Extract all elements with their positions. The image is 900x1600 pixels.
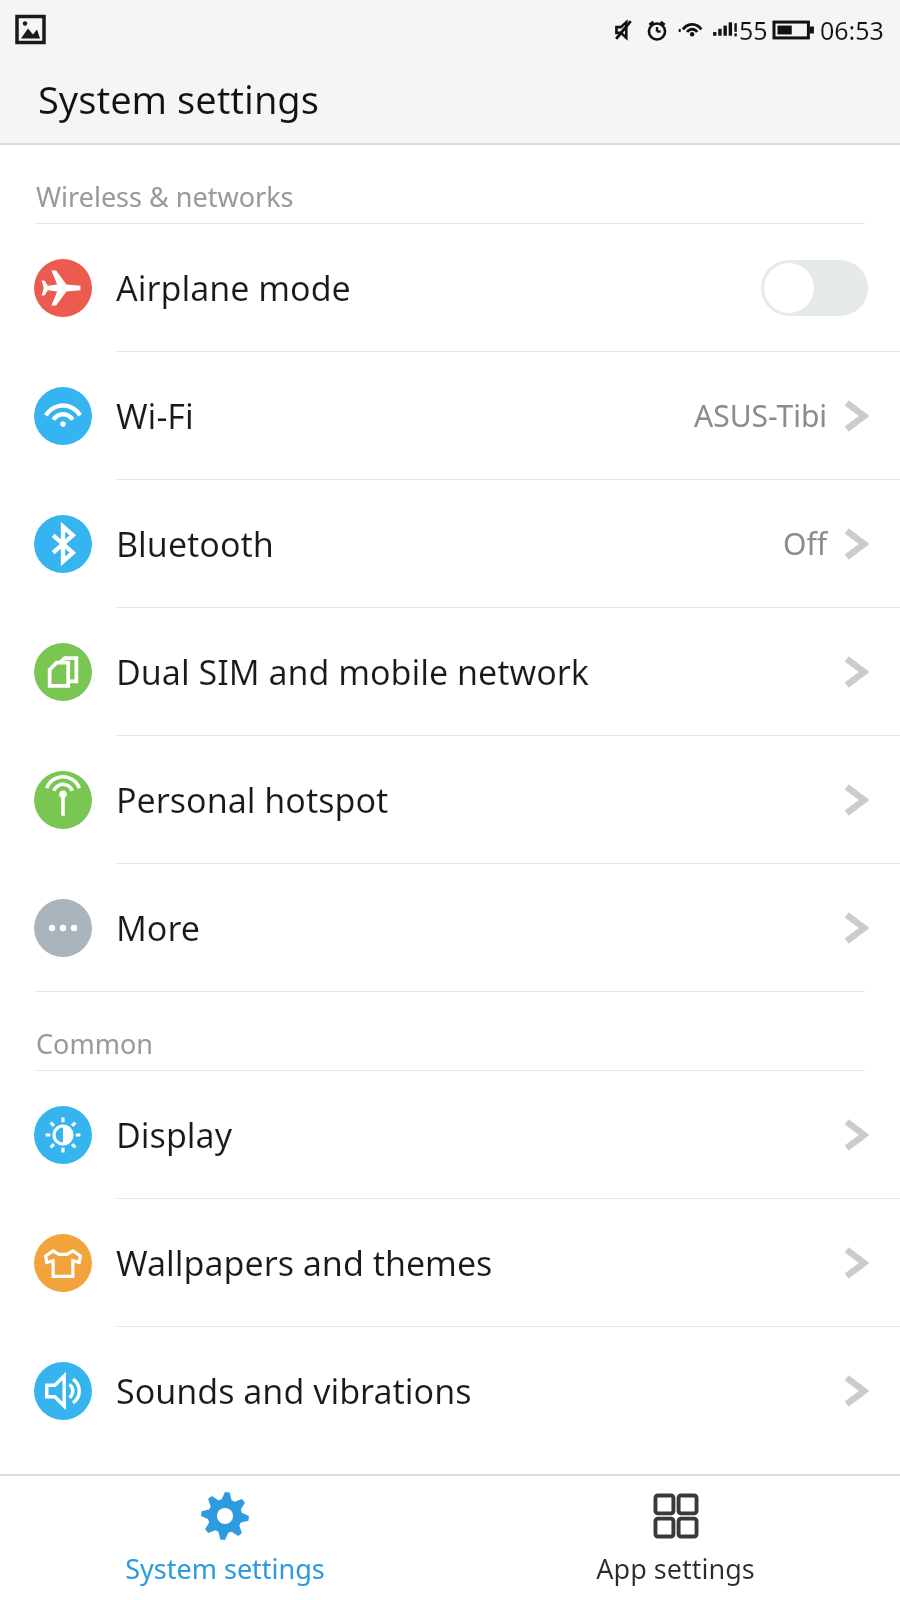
button[interactable]: More	[0, 864, 900, 991]
staticText: App settings	[596, 1550, 755, 1587]
button[interactable]: Display	[0, 1071, 900, 1198]
staticText: Wi-Fi	[116, 393, 194, 439]
button[interactable]: Airplane mode toggle, off	[761, 260, 868, 316]
button[interactable]: Personal hotspot	[0, 736, 900, 863]
button[interactable]: Airplane mode	[0, 224, 900, 351]
button[interactable]: Dual SIM and mobile network	[0, 608, 900, 735]
staticText: ASUS-Tibi	[694, 395, 828, 436]
staticText: Wireless & networks	[36, 178, 294, 215]
button[interactable]: Sounds and vibrations	[0, 1327, 900, 1454]
staticText: Sounds and vibrations	[116, 1368, 472, 1414]
staticText: Personal hotspot	[116, 777, 389, 823]
staticText: Off	[783, 523, 828, 564]
staticText: Airplane mode	[116, 265, 351, 311]
button[interactable]: Bluetooth	[0, 480, 900, 607]
button[interactable]: App settings	[450, 1476, 900, 1600]
staticText: System settings	[38, 73, 319, 125]
staticText: 55	[739, 13, 768, 47]
staticText: Wallpapers and themes	[116, 1240, 493, 1286]
staticText: System settings	[125, 1550, 325, 1587]
staticText: Dual SIM and mobile network	[116, 649, 590, 695]
button[interactable]: System settings	[0, 1476, 450, 1600]
staticText: Common	[36, 1025, 153, 1062]
button[interactable]: Wi-Fi	[0, 352, 900, 479]
staticText: 06:53	[820, 13, 884, 47]
staticText: More	[116, 905, 200, 951]
staticText: Bluetooth	[116, 521, 274, 567]
staticText: Display	[116, 1112, 232, 1158]
button[interactable]: Wallpapers and themes	[0, 1199, 900, 1326]
